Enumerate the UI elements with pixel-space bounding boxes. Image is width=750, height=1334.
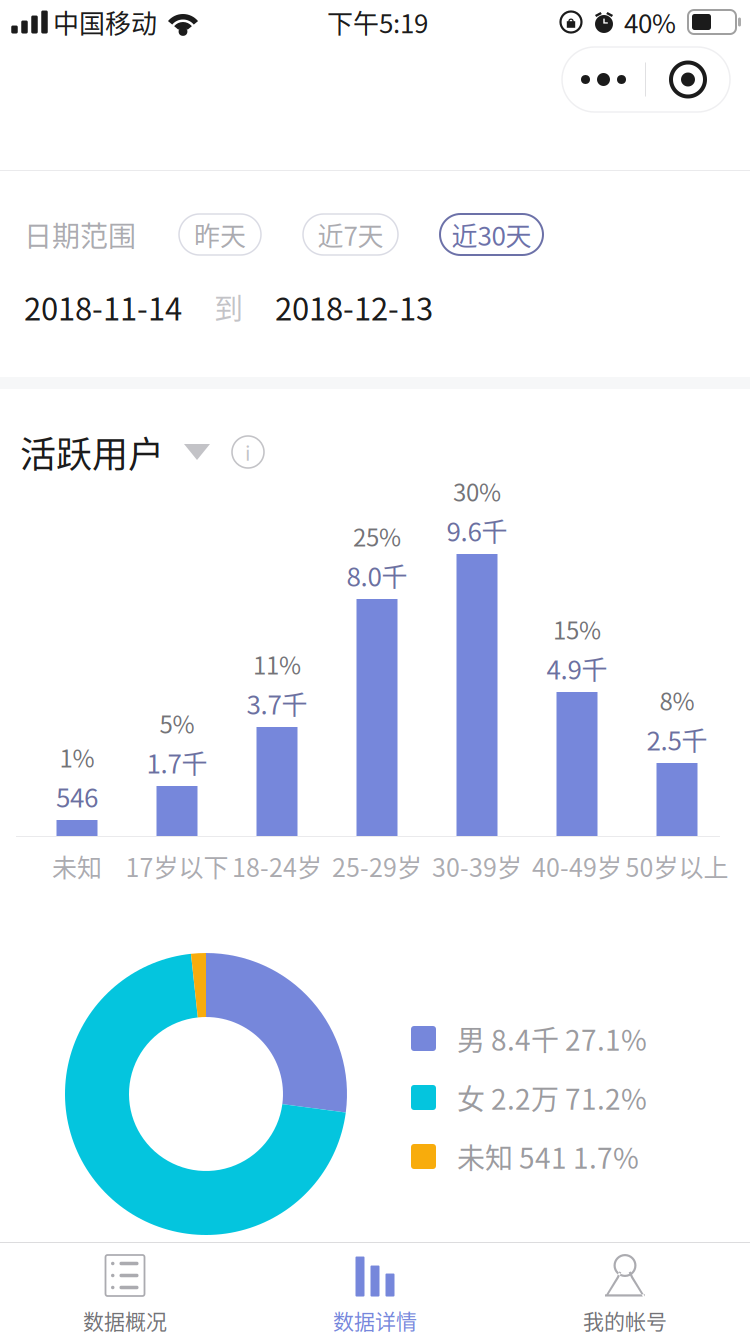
- staticText: 25-29岁: [332, 848, 422, 884]
- staticText: 近7天: [317, 216, 383, 253]
- staticText: 11%: [253, 647, 301, 681]
- staticText: 3.7千: [246, 684, 307, 722]
- button[interactable]: 数据详情: [250, 1243, 500, 1334]
- button[interactable]: 我的帐号: [500, 1243, 750, 1334]
- staticText: 数据概况: [83, 1305, 167, 1334]
- button[interactable]: About active users: [226, 430, 270, 474]
- button[interactable]: 昨天: [179, 214, 261, 255]
- staticText: i: [245, 437, 251, 466]
- staticText: 1.7千: [146, 743, 207, 781]
- staticText: 50岁以上: [625, 848, 728, 884]
- staticText: 未知: [52, 848, 102, 884]
- staticText: 546: [56, 777, 98, 815]
- staticText: 未知 541 1.7%: [457, 1136, 639, 1177]
- staticText: 15%: [553, 612, 601, 646]
- staticText: 5%: [159, 706, 194, 740]
- button[interactable]: Change metric: [178, 438, 216, 466]
- staticText: 4.9千: [546, 649, 607, 687]
- button[interactable]: 数据概况: [0, 1243, 250, 1334]
- staticText: 近30天: [451, 216, 531, 253]
- staticText: 40-49岁: [532, 848, 622, 884]
- staticText: 30-39岁: [432, 848, 522, 884]
- staticText: 数据详情: [333, 1305, 417, 1334]
- button[interactable]: 近7天: [303, 214, 398, 255]
- staticText: 18-24岁: [232, 848, 322, 884]
- staticText: 到: [214, 286, 243, 328]
- staticText: 昨天: [194, 216, 246, 253]
- staticText: 9.6千: [446, 511, 507, 549]
- staticText: 2.5千: [646, 720, 707, 758]
- staticText: 我的帐号: [583, 1305, 667, 1334]
- staticText: 25%: [353, 519, 401, 553]
- button[interactable]: Close mini program: [646, 47, 730, 112]
- staticText: 男 8.4千 27.1%: [457, 1018, 647, 1059]
- staticText: 中国移动: [53, 3, 157, 41]
- staticText: 1%: [59, 740, 94, 774]
- staticText: 8.0千: [346, 556, 407, 594]
- staticText: 2018-11-14: [24, 285, 182, 329]
- button[interactable]: More options: [562, 47, 645, 112]
- staticText: 30%: [453, 474, 501, 508]
- staticText: 女 2.2万 71.2%: [457, 1077, 647, 1118]
- staticText: 下午5:19: [327, 3, 428, 41]
- staticText: 40%: [624, 3, 676, 41]
- staticText: 2018-12-13: [275, 285, 433, 329]
- staticText: 17岁以下: [125, 848, 228, 884]
- staticText: 8%: [659, 683, 694, 717]
- staticText: 日期范围: [24, 214, 136, 255]
- staticText: 活跃用户: [20, 426, 164, 478]
- button[interactable]: 近30天: [440, 214, 543, 255]
